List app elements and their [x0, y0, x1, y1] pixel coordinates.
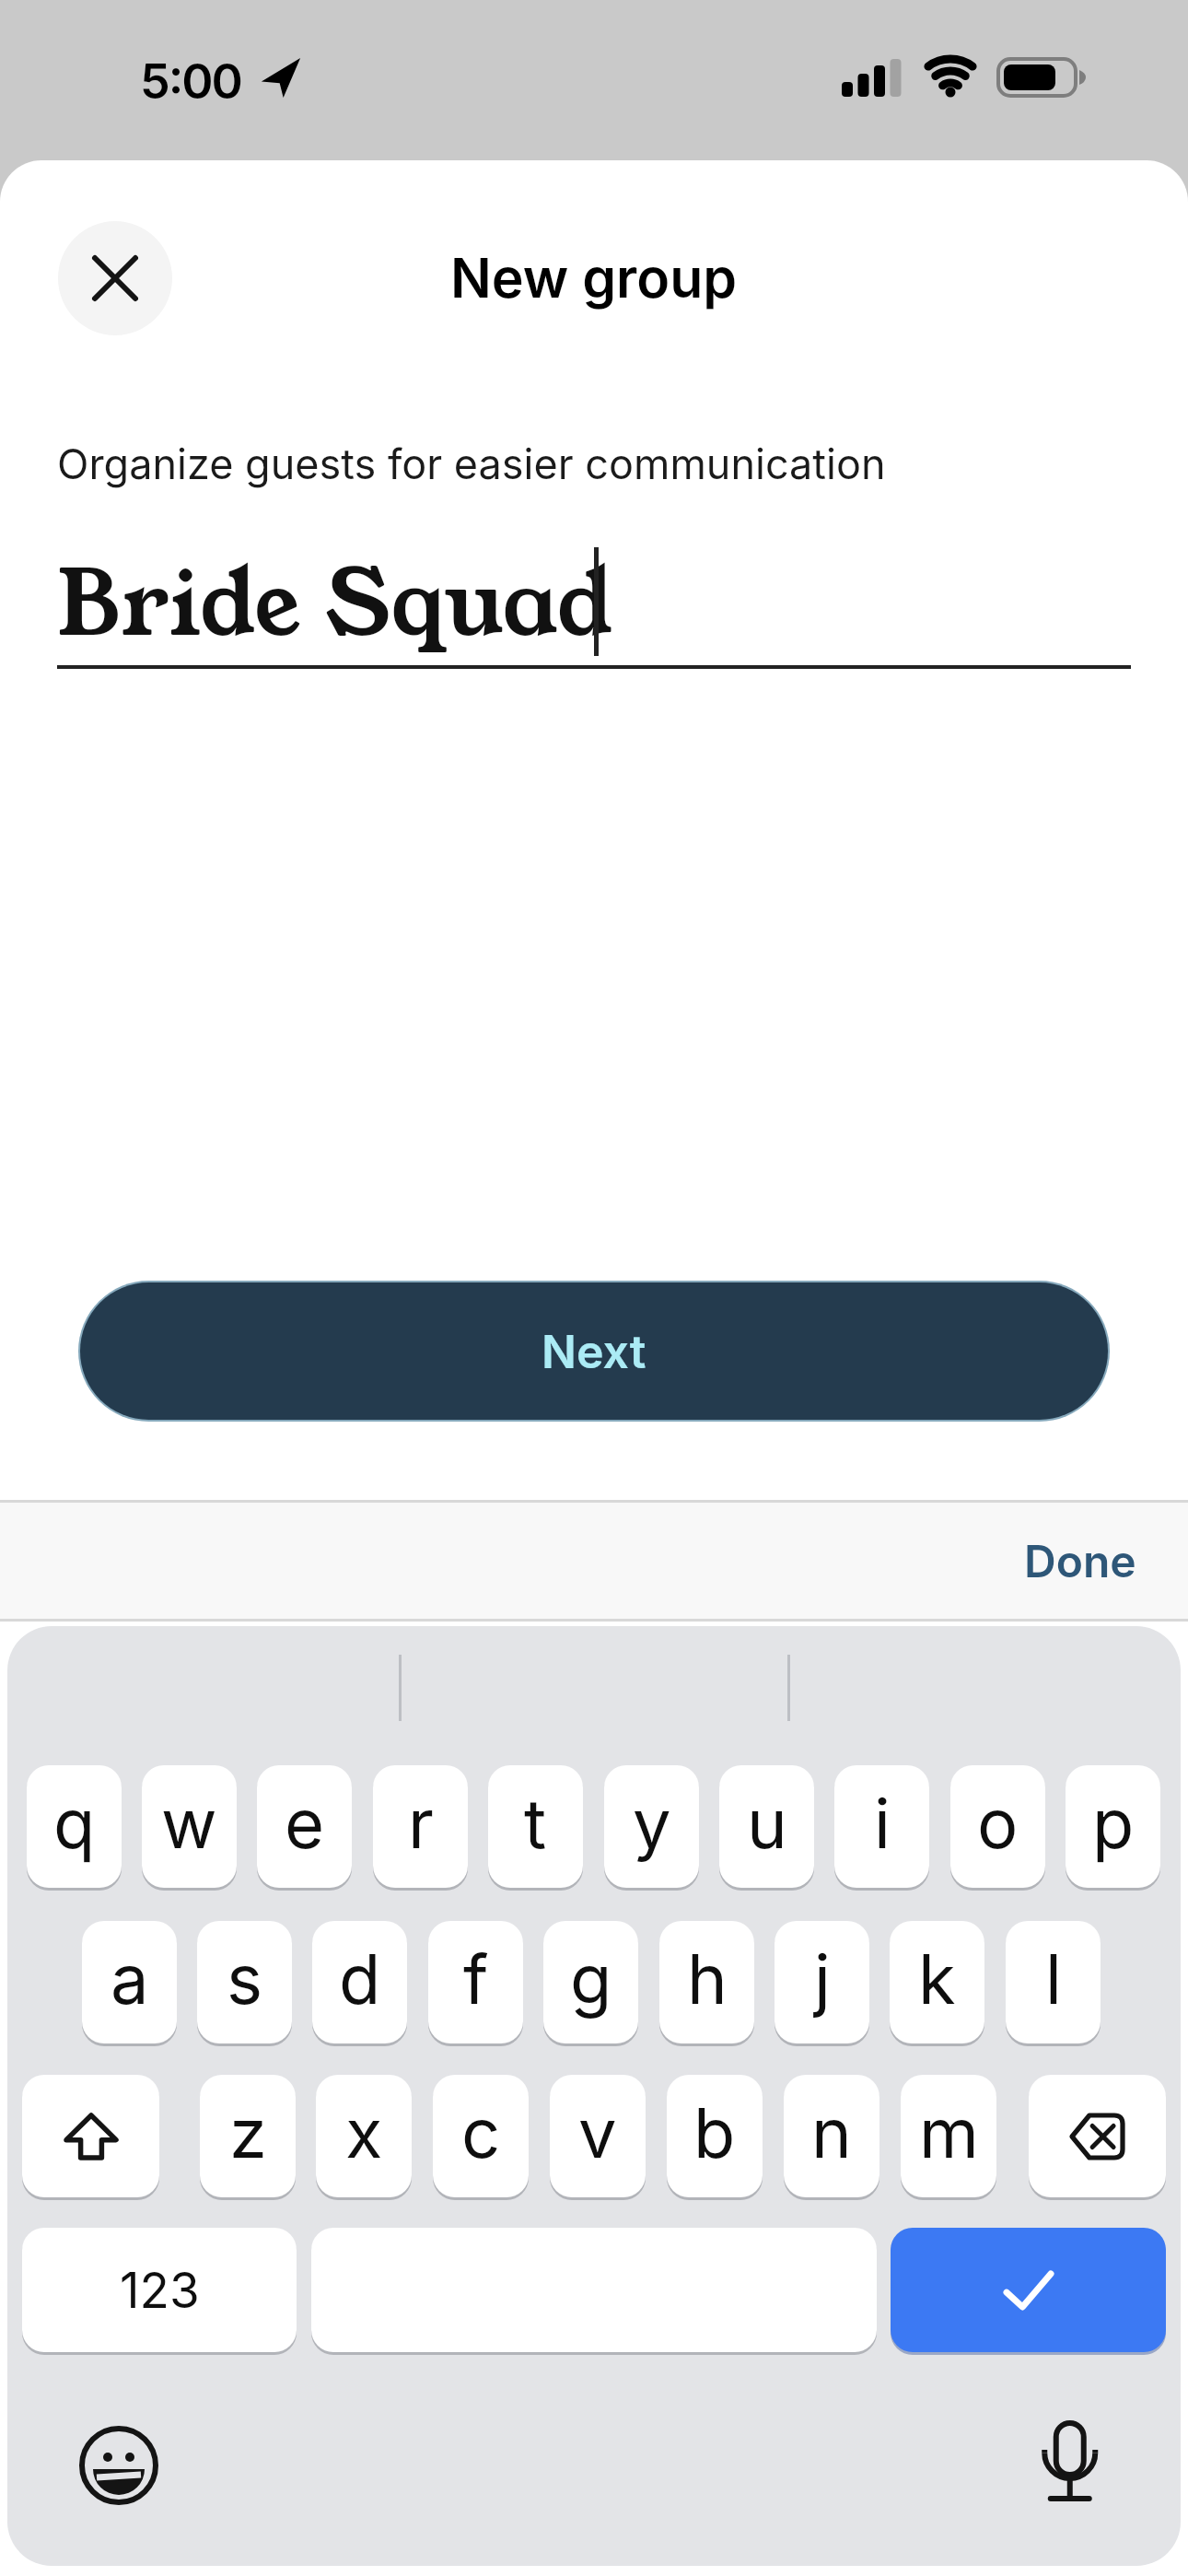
button[interactable]	[1029, 2075, 1166, 2197]
button[interactable]: q	[27, 1765, 122, 1888]
button[interactable]: s	[197, 1921, 292, 2043]
button[interactable]: 123	[22, 2228, 297, 2352]
staticText: x	[345, 2091, 383, 2174]
staticText: o	[977, 1782, 1019, 1865]
staticText: Next	[542, 1324, 646, 1379]
button[interactable]	[311, 2228, 877, 2352]
button[interactable]: f	[428, 1921, 523, 2043]
button[interactable]: e	[257, 1765, 352, 1888]
staticText: New group	[450, 245, 738, 310]
staticText: w	[161, 1782, 217, 1865]
staticText: Bride Squad	[57, 542, 614, 668]
staticText: p	[1092, 1782, 1135, 1865]
button[interactable]: i	[834, 1765, 929, 1888]
button[interactable]: d	[312, 1921, 407, 2043]
staticText: y	[633, 1782, 671, 1865]
button[interactable]: w	[142, 1765, 237, 1888]
button[interactable]: x	[316, 2075, 412, 2197]
button[interactable]: k	[890, 1921, 984, 2043]
staticText: l	[1045, 1938, 1062, 2020]
staticText: q	[53, 1782, 96, 1865]
staticText: f	[463, 1938, 489, 2020]
button[interactable]: Done	[1024, 1534, 1136, 1587]
button[interactable]	[77, 2424, 160, 2507]
staticText: m	[919, 2091, 979, 2174]
button[interactable]	[58, 221, 172, 335]
button[interactable]: t	[488, 1765, 583, 1888]
staticText: s	[227, 1938, 263, 2020]
button[interactable]: g	[543, 1921, 638, 2043]
staticText: b	[693, 2091, 736, 2174]
button[interactable]: m	[901, 2075, 996, 2197]
button[interactable]	[891, 2228, 1166, 2352]
button[interactable]	[1037, 2416, 1103, 2508]
staticText: z	[229, 2091, 267, 2174]
staticText: e	[285, 1782, 325, 1865]
staticText: a	[111, 1938, 149, 2020]
button[interactable]: v	[550, 2075, 646, 2197]
staticText: Organize guests for easier communication	[57, 439, 886, 488]
staticText: c	[461, 2091, 501, 2174]
staticText: t	[524, 1782, 547, 1865]
staticText: r	[408, 1782, 434, 1865]
button[interactable]: o	[950, 1765, 1045, 1888]
staticText: Done	[1024, 1534, 1136, 1587]
button[interactable]	[22, 2075, 159, 2197]
button[interactable]: Next	[78, 1281, 1110, 1422]
staticText: n	[811, 2091, 852, 2174]
button[interactable]: z	[200, 2075, 296, 2197]
button[interactable]: b	[667, 2075, 763, 2197]
button[interactable]: p	[1066, 1765, 1160, 1888]
button[interactable]: u	[719, 1765, 814, 1888]
staticText: i	[874, 1782, 891, 1865]
button[interactable]: a	[82, 1921, 177, 2043]
staticText: u	[747, 1782, 787, 1865]
button[interactable]: r	[373, 1765, 468, 1888]
button[interactable]: l	[1006, 1921, 1101, 2043]
staticText: d	[339, 1938, 381, 2020]
staticText: 5:00	[140, 53, 241, 111]
staticText: j	[814, 1938, 831, 2020]
button[interactable]: y	[604, 1765, 699, 1888]
staticText: 123	[120, 2261, 200, 2320]
staticText: h	[687, 1938, 728, 2020]
button[interactable]: n	[784, 2075, 879, 2197]
button[interactable]: j	[775, 1921, 869, 2043]
staticText: v	[578, 2091, 617, 2174]
staticText: k	[918, 1938, 956, 2020]
button[interactable]: h	[659, 1921, 754, 2043]
staticText: g	[570, 1938, 612, 2020]
button[interactable]: c	[433, 2075, 529, 2197]
